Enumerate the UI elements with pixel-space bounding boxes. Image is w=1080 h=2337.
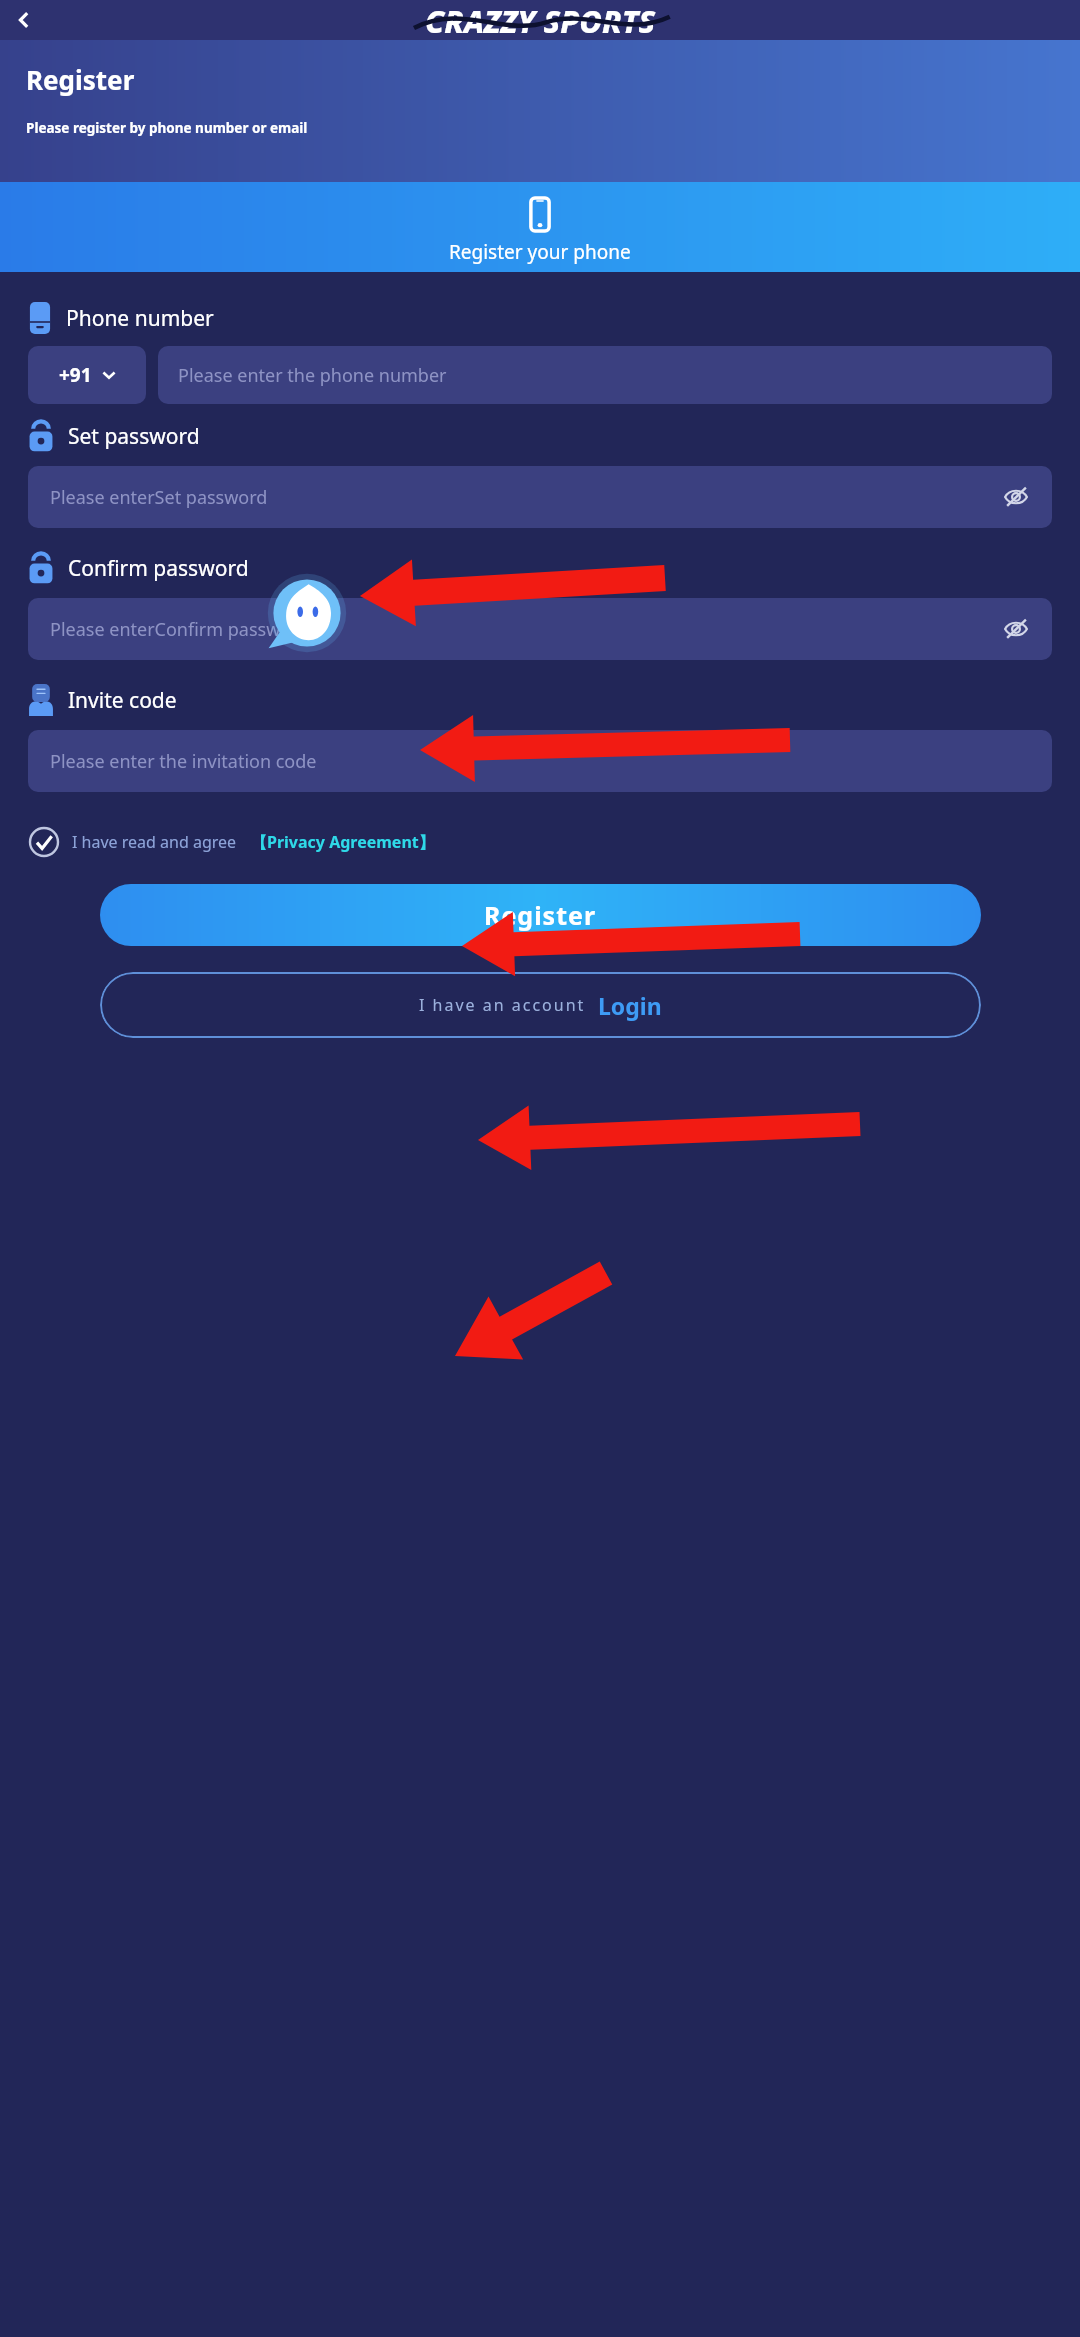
staticText: Invite code	[68, 686, 177, 715]
staticText: Please enter the phone number	[178, 363, 447, 388]
staticText: Register	[26, 62, 135, 97]
staticText: Please register by phone number or email	[26, 119, 308, 137]
button[interactable]: Show password	[998, 479, 1034, 515]
staticText: Please enterConfirm password	[50, 617, 310, 642]
button[interactable]: Show password	[998, 611, 1034, 647]
staticText: I have an account	[419, 994, 586, 1016]
button[interactable]: Support chat	[267, 573, 347, 653]
button[interactable]: I have read and agree	[28, 826, 435, 858]
button[interactable]: Please enterSet password	[28, 466, 1052, 528]
staticText: Register your phone	[449, 239, 631, 265]
button[interactable]: Register your phone	[0, 189, 1080, 265]
staticText: CRAZZY SPORTS	[425, 0, 656, 40]
staticText: Confirm password	[68, 554, 249, 583]
staticText: Register	[484, 898, 597, 932]
staticText: 【Privacy Agreement】	[251, 831, 435, 853]
button[interactable]: Register	[100, 884, 981, 946]
staticText: Login	[598, 990, 662, 1021]
staticText: I have read and agree	[72, 831, 237, 853]
button[interactable]: Please enter the invitation code	[28, 730, 1052, 792]
staticText: +91	[59, 362, 92, 388]
staticText: Set password	[68, 422, 200, 451]
button[interactable]: Please enterConfirm password	[28, 598, 1052, 660]
button[interactable]: I have an account	[100, 972, 981, 1038]
staticText: Phone number	[66, 304, 214, 333]
button[interactable]: Please enter the phone number	[158, 346, 1052, 404]
button[interactable]: +91	[28, 346, 146, 404]
button[interactable]: Back	[5, 1, 43, 39]
staticText: Please enter the invitation code	[50, 749, 317, 774]
staticText: Please enterSet password	[50, 485, 268, 510]
